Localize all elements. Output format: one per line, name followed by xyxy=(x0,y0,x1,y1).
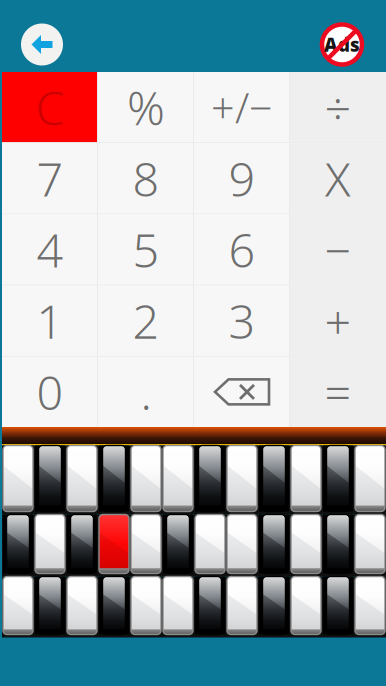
button[interactable]: 2 xyxy=(98,286,194,356)
button[interactable]: = xyxy=(290,357,386,427)
button[interactable]: − xyxy=(290,214,386,285)
button[interactable] xyxy=(227,445,257,511)
button[interactable]: Delete xyxy=(194,357,290,427)
staticText: − xyxy=(324,218,351,280)
button[interactable] xyxy=(67,445,97,511)
button[interactable]: 6 xyxy=(194,214,290,285)
button[interactable]: ÷ xyxy=(290,72,386,142)
button[interactable]: +/− xyxy=(194,72,290,142)
button[interactable] xyxy=(35,445,65,511)
button[interactable] xyxy=(35,576,65,634)
button[interactable] xyxy=(131,514,161,573)
button[interactable] xyxy=(195,445,225,511)
button[interactable] xyxy=(163,445,193,511)
button[interactable] xyxy=(291,514,321,573)
button[interactable] xyxy=(131,576,161,634)
staticText: 6 xyxy=(228,218,255,280)
button[interactable]: C xyxy=(2,72,98,142)
button[interactable] xyxy=(35,514,65,573)
button[interactable] xyxy=(3,445,33,511)
button[interactable] xyxy=(355,514,385,573)
staticText: 0 xyxy=(36,361,63,423)
staticText: 2 xyxy=(132,290,159,352)
button[interactable] xyxy=(163,576,193,634)
button[interactable] xyxy=(163,514,193,573)
staticText: Ads xyxy=(324,32,360,57)
button[interactable]: . xyxy=(98,357,194,427)
button[interactable] xyxy=(99,576,129,634)
button[interactable] xyxy=(355,576,385,634)
button[interactable] xyxy=(99,514,129,573)
staticText: ÷ xyxy=(324,76,351,138)
button[interactable] xyxy=(195,514,225,573)
staticText: C xyxy=(35,76,64,138)
staticText: 4 xyxy=(36,218,63,280)
button[interactable] xyxy=(3,514,33,573)
staticText: 3 xyxy=(228,290,255,352)
button[interactable] xyxy=(195,576,225,634)
button[interactable] xyxy=(67,576,97,634)
staticText: = xyxy=(324,361,351,423)
button[interactable]: 4 xyxy=(2,214,98,285)
button[interactable]: 3 xyxy=(194,286,290,356)
staticText: + xyxy=(324,290,351,352)
button[interactable]: 5 xyxy=(98,214,194,285)
staticText: . xyxy=(140,361,151,423)
button[interactable] xyxy=(259,576,289,634)
button[interactable]: 7 xyxy=(2,143,98,213)
staticText: 1 xyxy=(36,290,63,352)
button[interactable] xyxy=(67,514,97,573)
button[interactable]: + xyxy=(290,286,386,356)
button[interactable]: % xyxy=(98,72,194,142)
button[interactable]: 1 xyxy=(2,286,98,356)
staticText: 7 xyxy=(36,147,63,209)
button[interactable] xyxy=(227,514,257,573)
button[interactable] xyxy=(259,514,289,573)
button[interactable] xyxy=(99,445,129,511)
button[interactable] xyxy=(291,445,321,511)
button[interactable]: 8 xyxy=(98,143,194,213)
button[interactable] xyxy=(227,576,257,634)
button[interactable] xyxy=(131,445,161,511)
button[interactable] xyxy=(323,445,353,511)
button[interactable] xyxy=(3,576,33,634)
button[interactable]: 9 xyxy=(194,143,290,213)
button[interactable] xyxy=(259,445,289,511)
button[interactable] xyxy=(291,576,321,634)
staticText: +/− xyxy=(211,80,273,135)
staticText: X xyxy=(325,147,351,209)
button[interactable] xyxy=(323,576,353,634)
button[interactable] xyxy=(323,514,353,573)
staticText: % xyxy=(127,76,165,138)
staticText: 8 xyxy=(132,147,159,209)
staticText: 5 xyxy=(132,218,159,280)
button[interactable]: 0 xyxy=(2,357,98,427)
button[interactable]: Remove ads xyxy=(314,16,370,72)
staticText: 9 xyxy=(228,147,255,209)
button[interactable]: Back xyxy=(14,16,70,72)
button[interactable] xyxy=(355,445,385,511)
button[interactable]: X xyxy=(290,143,386,213)
